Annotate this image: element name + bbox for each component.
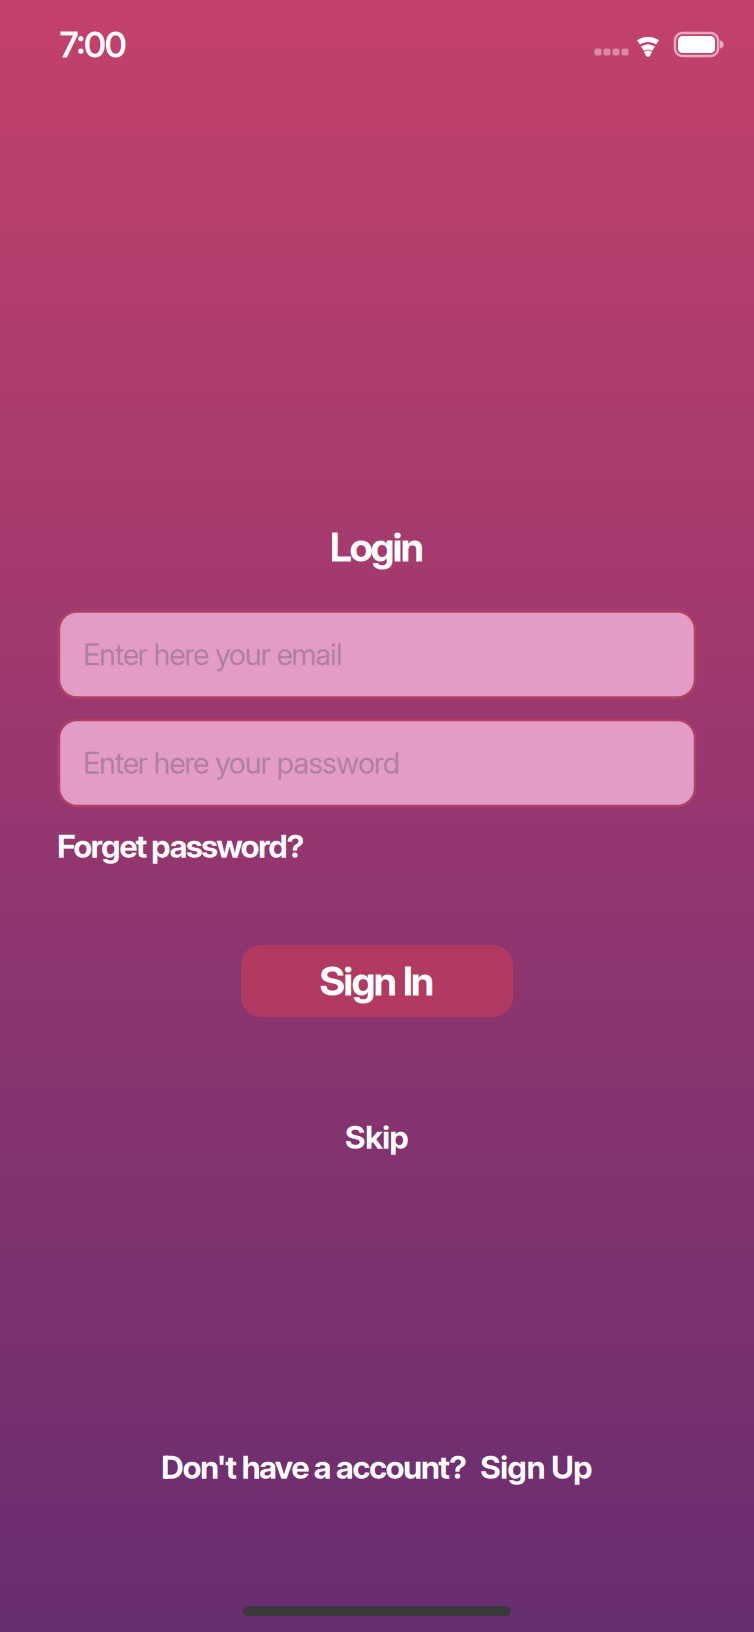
staticText: Sign In (319, 957, 435, 1005)
button[interactable]: Enter here your password (59, 720, 695, 806)
staticText: Enter here your password (83, 745, 400, 781)
staticText: Forget password? (57, 827, 304, 865)
staticText: Sign Up (480, 1448, 593, 1486)
staticText: Login (329, 523, 424, 571)
staticText: Skip (345, 1118, 409, 1156)
staticText: Don't have a account? (161, 1448, 467, 1486)
button[interactable]: Enter here your email (59, 611, 695, 697)
button[interactable]: Sign In (241, 945, 513, 1017)
staticText: Enter here your email (83, 637, 343, 672)
button[interactable]: Sign Up (480, 1448, 593, 1486)
staticText: 7:00 (59, 24, 126, 66)
button[interactable]: Skip (345, 1118, 409, 1156)
button[interactable]: Forget password? (57, 827, 304, 865)
